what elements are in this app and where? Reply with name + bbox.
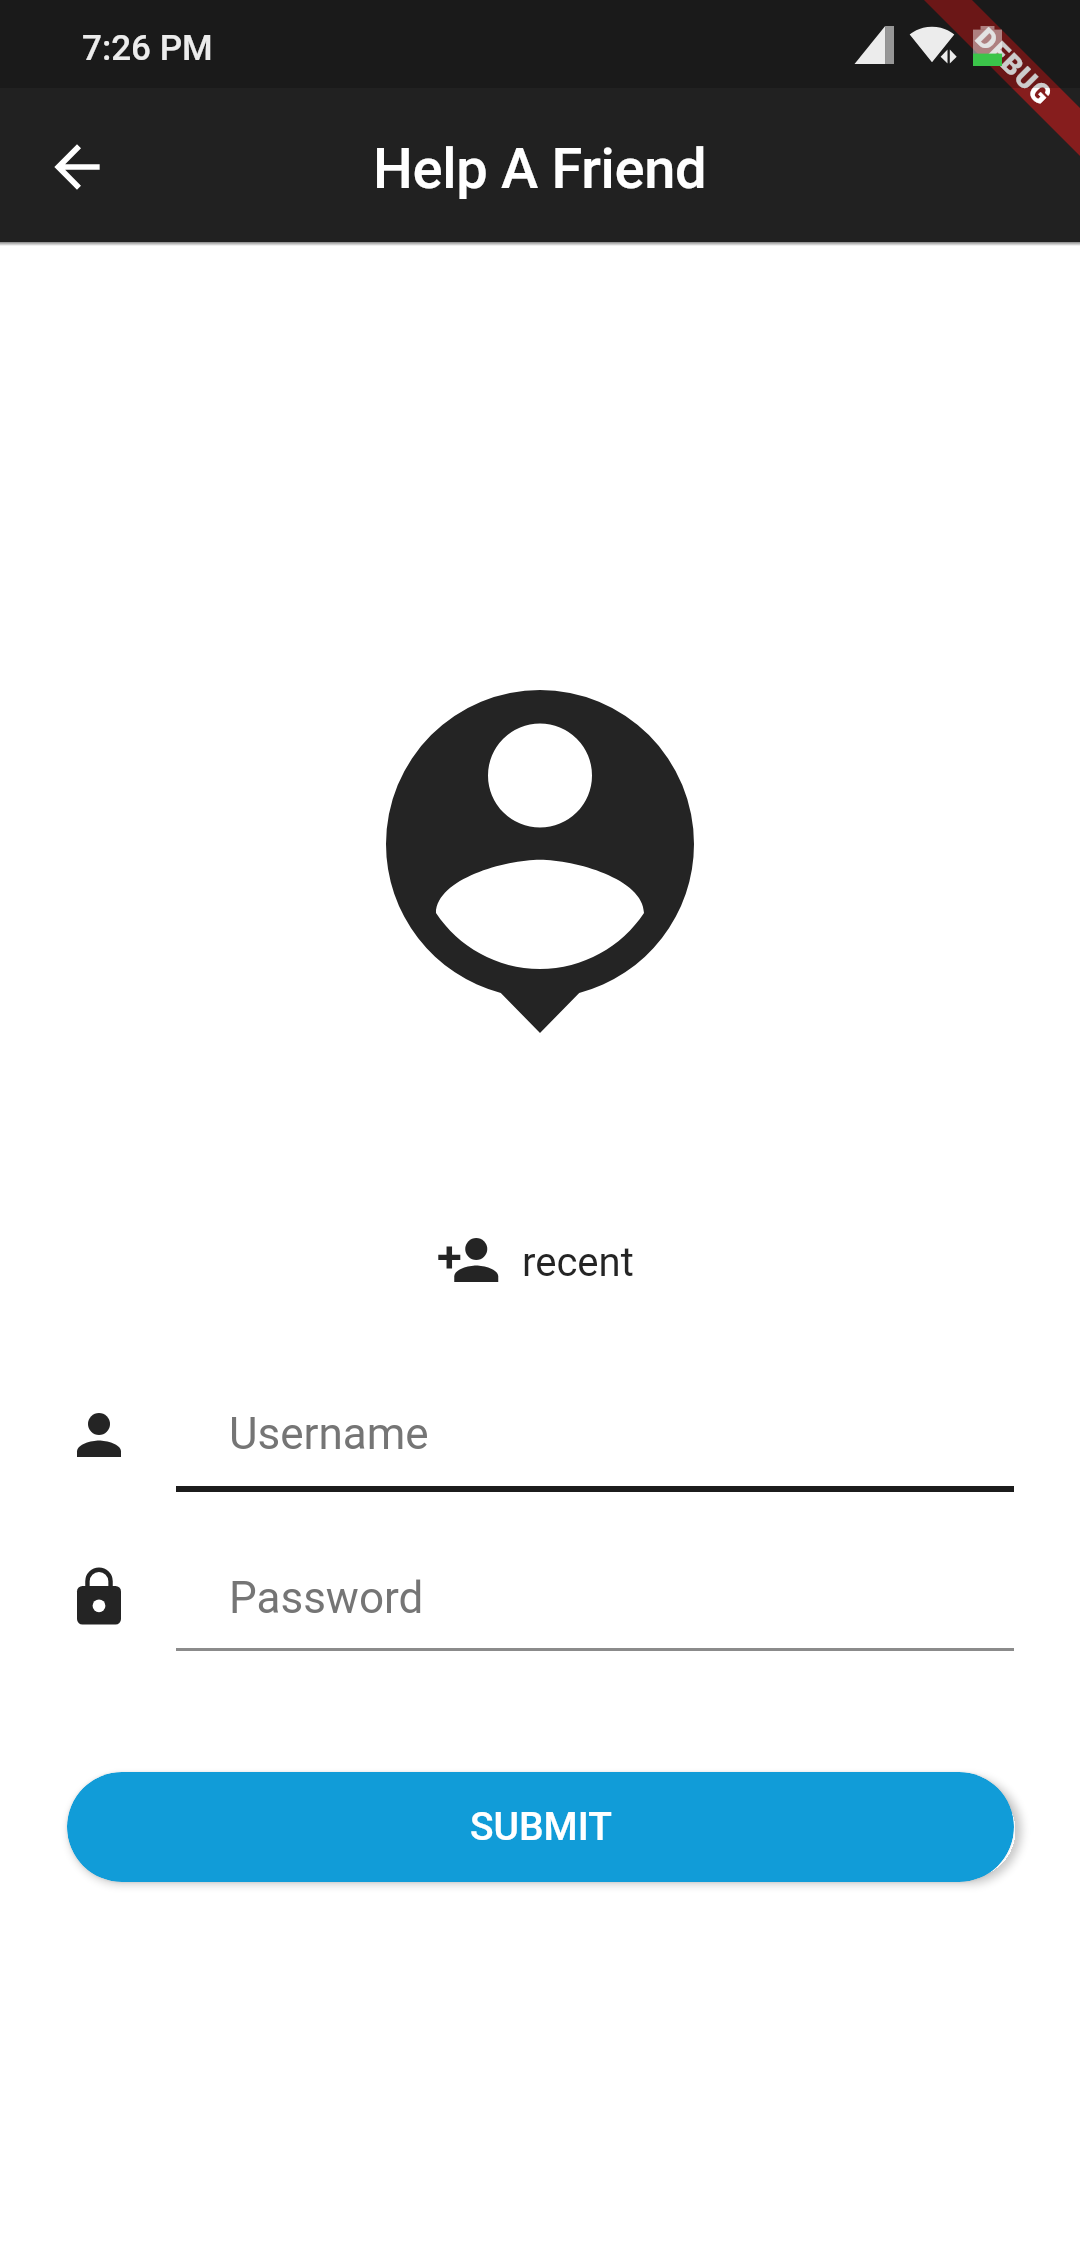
button[interactable]: Password	[66, 1556, 1014, 1654]
staticText: 7:26 PM	[82, 28, 213, 69]
staticText: recent	[522, 1239, 634, 1286]
staticText: SUBMIT	[470, 1804, 612, 1850]
button[interactable]: recent	[435, 1227, 634, 1293]
staticText: Password	[229, 1572, 424, 1624]
staticText: Username	[229, 1408, 429, 1460]
staticText: DEBUG	[969, 21, 1059, 111]
button[interactable]: Username	[66, 1394, 1014, 1498]
staticText: Help A Friend	[373, 136, 707, 202]
button[interactable]: SUBMIT	[67, 1772, 1014, 1882]
button[interactable]: Back	[21, 111, 133, 223]
